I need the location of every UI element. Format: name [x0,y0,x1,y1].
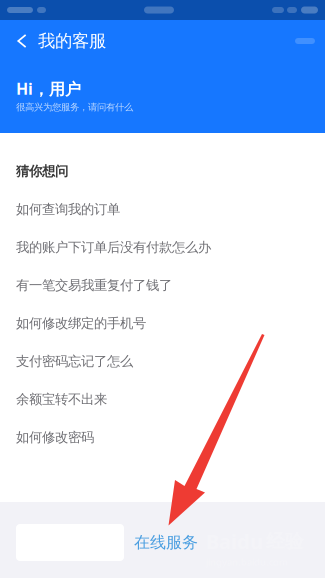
staticText: 如何修改绑定的手机号 [16,315,146,332]
staticText: 有一笔交易我重复付了钱了 [16,277,172,294]
staticText: 余额宝转不出来 [16,391,107,408]
button[interactable]: 如何修改绑定的手机号 [0,304,325,342]
staticText: 支付密码忘记了怎么 [16,353,133,370]
button[interactable]: 我的账户下订单后没有付款怎么办 [0,228,325,266]
staticText: 如何修改密码 [16,429,94,446]
button[interactable]: 余额宝转不出来 [0,380,325,418]
staticText: Hi，用户 [16,78,81,99]
button[interactable]: Back [11,20,33,62]
staticText: 很高兴为您服务，请问有什么 [16,101,133,113]
button[interactable]: 如何修改密码 [0,418,325,456]
button[interactable]: 在线服务 [124,524,208,561]
staticText: 我的账户下订单后没有付款怎么办 [16,239,211,256]
button[interactable]: 有一笔交易我重复付了钱了 [0,266,325,304]
button[interactable]: 支付密码忘记了怎么 [0,342,325,380]
staticText: 猜你想问 [16,163,68,179]
staticText: 我的客服 [38,30,106,52]
staticText: 如何查询我的订单 [16,201,120,218]
button[interactable]: 如何查询我的订单 [0,190,325,228]
staticText: 在线服务 [134,533,198,552]
